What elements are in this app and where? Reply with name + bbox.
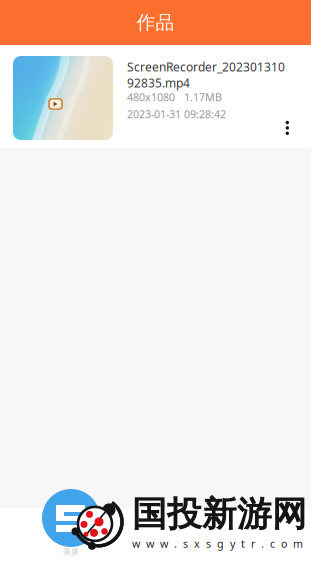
staticText: 480x1080 1.17MB (127, 90, 222, 104)
staticText: 作品 (136, 11, 174, 34)
staticText: ScreenRecorder_202301310 92835.mp4 (127, 59, 285, 91)
staticText: 录屏 (63, 547, 79, 557)
staticText: w w w . s x s g y t r . c o m (132, 537, 303, 551)
button[interactable]: ScreenRecorder_202301310 92835.mp4 (0, 45, 311, 148)
staticText: 2023-01-31 09:28:42 (127, 107, 226, 121)
staticText: 国投新游网 (132, 493, 307, 536)
